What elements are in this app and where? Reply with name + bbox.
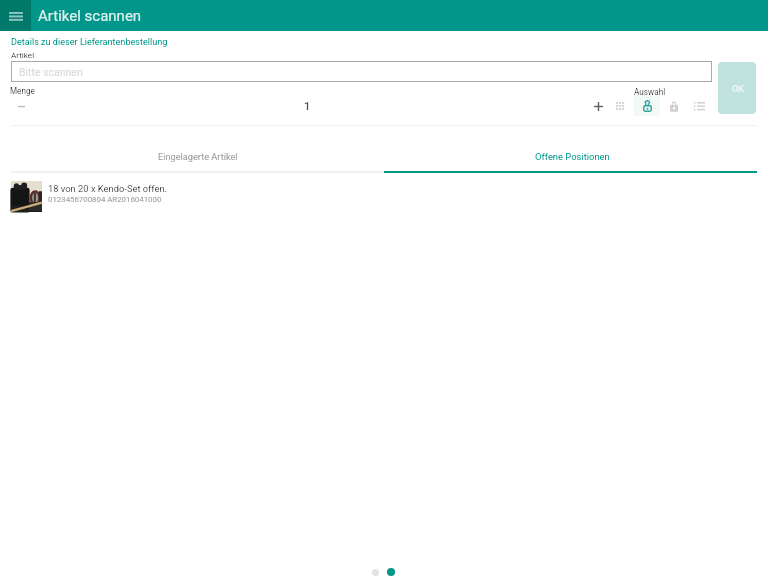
button[interactable]: Eingelagerte Artikel <box>11 126 384 171</box>
button[interactable]: 18 von 20 x Kendo-Set offen. <box>0 172 768 221</box>
staticText: Menge <box>10 86 35 96</box>
staticText: Details zu dieser Lieferantenbestellung <box>11 37 168 48</box>
staticText: Artikel <box>11 50 35 59</box>
button[interactable]: Unlocked, selection free <box>634 95 660 116</box>
button[interactable]: Page 1 <box>372 569 379 576</box>
button[interactable]: Details zu dieser Lieferantenbestellung <box>11 37 168 48</box>
button[interactable]: Decrease quantity <box>11 96 32 117</box>
staticText: 18 von 20 x Kendo-Set offen. <box>48 183 168 194</box>
staticText: 0123456700804 AR2016041000 <box>48 195 162 204</box>
staticText: Auswahl <box>634 87 666 97</box>
button[interactable]: Increase quantity <box>588 96 609 117</box>
button[interactable]: List selection <box>689 96 710 117</box>
staticText: Eingelagerte Artikel <box>158 151 238 162</box>
button[interactable]: Locked, selection fixed <box>663 96 684 117</box>
button[interactable]: Grid selection <box>610 96 631 117</box>
button[interactable]: Bitte scannen <box>11 61 712 82</box>
staticText: OK <box>732 84 744 95</box>
button[interactable]: Offene Positionen <box>384 126 757 171</box>
button[interactable]: Open navigation menu <box>0 0 31 31</box>
staticText: Bitte scannen <box>19 66 83 78</box>
staticText: Artikel scannen <box>38 7 142 25</box>
button[interactable]: Page 2, current <box>387 568 395 576</box>
staticText: 1 <box>304 100 311 113</box>
button[interactable]: OK <box>718 62 756 114</box>
staticText: Offene Positionen <box>535 151 610 162</box>
